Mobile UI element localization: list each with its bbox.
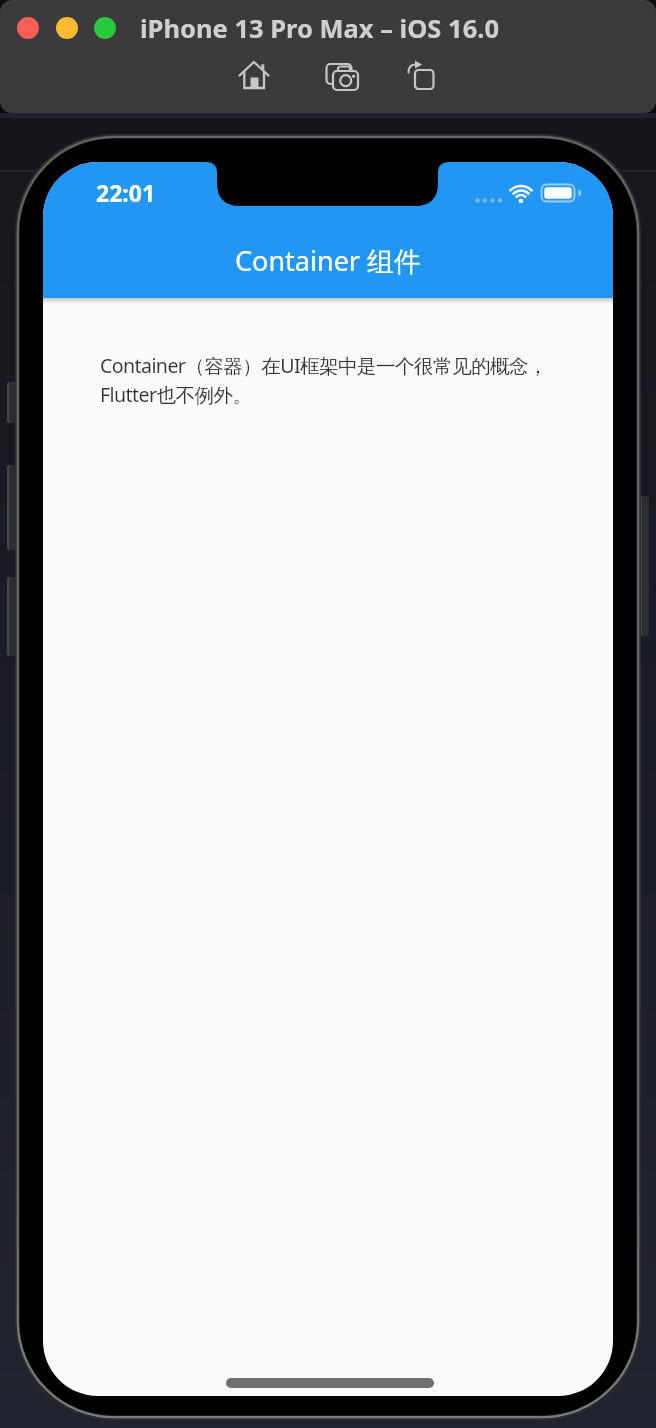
- staticText: Flutter也不例外。: [100, 381, 252, 408]
- staticText: 22:01: [96, 177, 156, 208]
- button[interactable]: [56, 17, 78, 39]
- button[interactable]: [94, 17, 116, 39]
- button[interactable]: [17, 17, 39, 39]
- staticText: Container 组件: [235, 242, 422, 279]
- staticText: iPhone 13 Pro Max – iOS 16.0: [140, 11, 499, 45]
- button[interactable]: [320, 56, 360, 94]
- staticText: Container（容器）在UI框架中是一个很常见的概念，: [100, 352, 547, 379]
- button[interactable]: [403, 59, 439, 93]
- button[interactable]: [226, 1378, 434, 1388]
- button[interactable]: [236, 59, 270, 93]
